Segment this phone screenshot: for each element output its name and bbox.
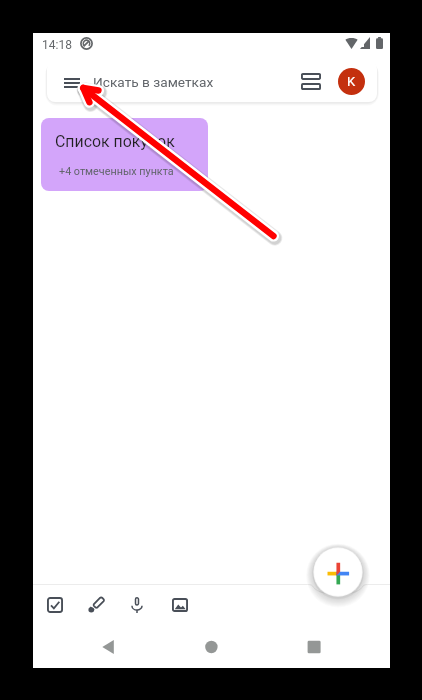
button[interactable]: Open navigation menu	[47, 61, 377, 102]
staticText: Искать в заметках	[93, 74, 214, 90]
button[interactable]: Список покупок	[41, 118, 208, 191]
staticText: Список покупок	[55, 132, 175, 151]
button[interactable]: New image note	[160, 584, 200, 626]
button[interactable]: New voice note	[117, 584, 157, 626]
button[interactable]: Account	[338, 68, 365, 95]
button[interactable]: New drawing	[76, 584, 116, 626]
button[interactable]: Open navigation menu	[47, 61, 96, 102]
staticText: K	[347, 74, 356, 89]
button[interactable]: Create new note	[306, 540, 370, 604]
staticText: +4 отмеченных пункта	[59, 165, 174, 178]
button[interactable]: New list	[35, 584, 75, 626]
button[interactable]: Switch to list view	[297, 61, 338, 102]
staticText: 14:18	[42, 38, 72, 52]
